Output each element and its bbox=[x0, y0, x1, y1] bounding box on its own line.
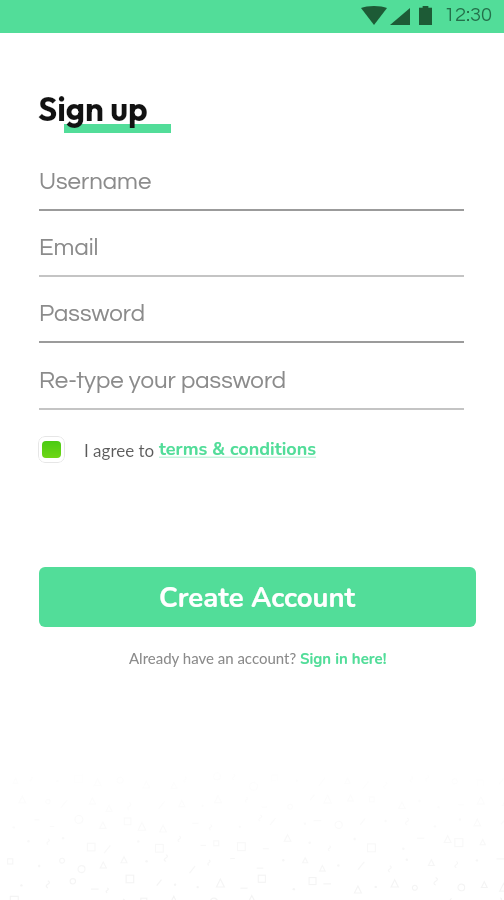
staticText: Username bbox=[39, 169, 152, 194]
button[interactable]: Re-type your password bbox=[39, 365, 464, 410]
staticText: Create Account bbox=[159, 579, 356, 617]
staticText: Password bbox=[39, 301, 145, 326]
button[interactable]: Sign in here! bbox=[300, 649, 387, 669]
button[interactable]: Password bbox=[39, 298, 464, 343]
staticText: I agree to bbox=[84, 440, 159, 460]
staticText: Sign up bbox=[38, 88, 148, 130]
button[interactable]: Agree to terms and conditions bbox=[38, 436, 65, 463]
button[interactable]: Create Account bbox=[39, 567, 476, 627]
button[interactable]: Email bbox=[39, 232, 464, 277]
staticText: Email bbox=[39, 235, 99, 260]
button[interactable]: terms & conditions bbox=[159, 437, 317, 462]
button[interactable]: Username bbox=[39, 166, 464, 211]
staticText: Re-type your password bbox=[39, 368, 287, 393]
staticText: Already have an account? bbox=[129, 649, 300, 667]
staticText: 12:30 bbox=[444, 5, 493, 26]
